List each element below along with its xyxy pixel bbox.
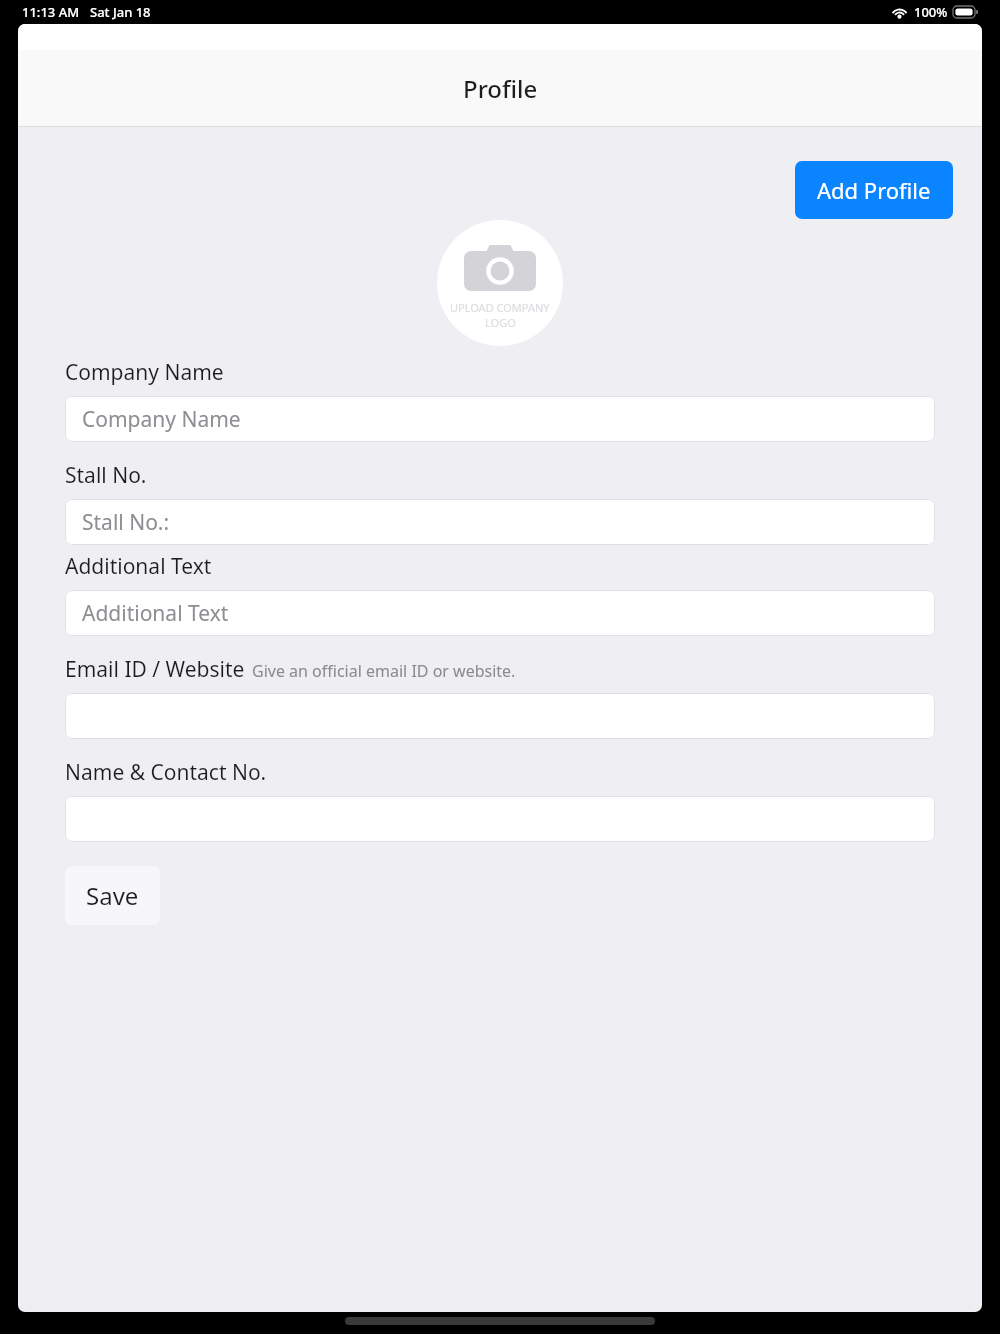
staticText: Add Profile	[817, 175, 931, 205]
button[interactable]: Additional Text	[65, 590, 935, 636]
staticText: Email ID / Website	[65, 655, 245, 684]
staticText: LOGO	[485, 315, 516, 330]
staticText: Company Name	[65, 358, 224, 387]
staticText: 100%	[914, 3, 948, 21]
staticText: Name & Contact No.	[65, 758, 267, 787]
button[interactable]: Add Profile	[795, 161, 953, 219]
staticText: Profile	[463, 72, 538, 105]
staticText: 11:13 AM	[22, 3, 80, 21]
button[interactable]	[65, 693, 935, 739]
staticText: Save	[86, 879, 139, 912]
staticText: UPLOAD COMPANY	[450, 300, 550, 315]
button[interactable]	[65, 796, 935, 842]
button[interactable]: Stall No.:	[65, 499, 935, 545]
staticText: Company Name	[82, 405, 241, 434]
button[interactable]: Save	[65, 866, 160, 925]
staticText: Additional Text	[82, 599, 229, 628]
staticText: Stall No.	[65, 461, 147, 490]
staticText: Sat Jan 18	[90, 3, 151, 21]
staticText: Give an official email ID or website.	[252, 660, 516, 682]
staticText: Stall No.:	[82, 508, 170, 537]
button[interactable]: Company Name	[65, 396, 935, 442]
button[interactable]: Upload company logo	[437, 220, 563, 346]
staticText: Additional Text	[65, 552, 212, 581]
